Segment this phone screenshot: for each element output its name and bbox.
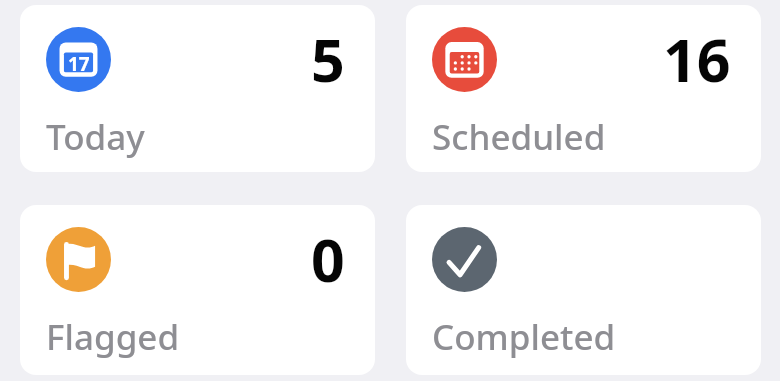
staticText: 0 xyxy=(311,219,345,299)
other: Scheduled icon xyxy=(432,27,497,92)
button[interactable]: Scheduled icon xyxy=(406,5,761,172)
staticText: 17 xyxy=(68,51,90,77)
staticText: Completed xyxy=(432,313,616,361)
button[interactable]: Flagged icon xyxy=(20,205,375,375)
staticText: Scheduled xyxy=(432,113,606,161)
button[interactable]: Today icon xyxy=(20,5,375,172)
other: Flagged icon xyxy=(46,227,111,292)
button[interactable]: Completed icon xyxy=(406,205,761,375)
staticText: 5 xyxy=(311,19,345,99)
other: Completed icon xyxy=(432,227,497,292)
staticText: Flagged xyxy=(46,313,180,361)
staticText: 16 xyxy=(663,19,731,99)
staticText: Today xyxy=(46,113,145,161)
other: Today icon xyxy=(46,27,111,92)
